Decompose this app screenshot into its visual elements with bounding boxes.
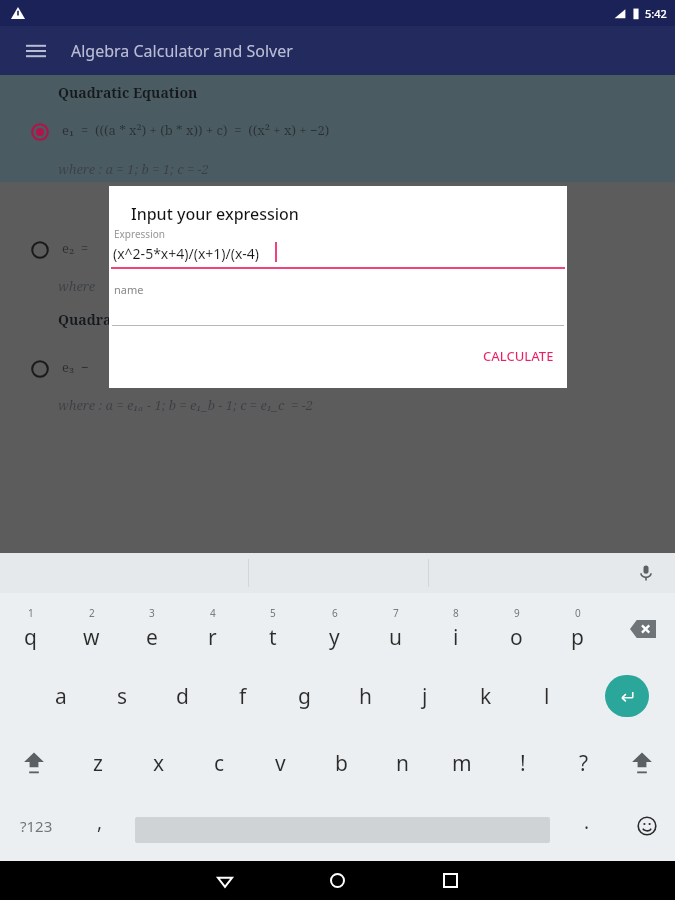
staticText: k: [480, 682, 492, 711]
button[interactable]: g: [278, 670, 330, 722]
button[interactable]: Select equation: [28, 357, 52, 381]
button[interactable]: b: [315, 737, 367, 789]
button[interactable]: a: [35, 670, 87, 722]
button[interactable]: s: [96, 670, 148, 722]
button[interactable]: x: [133, 737, 185, 789]
staticText: x: [153, 749, 165, 778]
staticText: l: [544, 682, 550, 711]
button[interactable]: 9: [490, 601, 542, 657]
button[interactable]: Home: [315, 861, 359, 900]
staticText: where : a = e₁ₐ − 1; b = e₁_b − 1; c = e…: [58, 396, 314, 414]
staticText: ?123: [20, 816, 53, 836]
staticText: a: [55, 682, 67, 711]
button[interactable]: Select equation: [28, 238, 52, 262]
staticText: b: [335, 749, 348, 778]
staticText: o: [510, 623, 523, 652]
button[interactable]: ,: [78, 803, 122, 849]
button[interactable]: Shift: [10, 739, 58, 787]
staticText: ?: [579, 749, 589, 778]
staticText: !: [520, 749, 526, 778]
staticText: c: [214, 749, 225, 778]
staticText: e: [146, 623, 158, 652]
staticText: Algebra Calculator and Solver: [71, 40, 293, 62]
staticText: (x^2-5*x+4)/(x+1)/(x-4): [113, 244, 260, 263]
staticText: CALCULATE: [483, 347, 554, 365]
button[interactable]: j: [399, 670, 451, 722]
button[interactable]: v: [254, 737, 306, 789]
button[interactable]: 4: [186, 601, 238, 657]
button[interactable]: 3: [126, 601, 178, 657]
button[interactable]: Emoji: [626, 805, 668, 847]
staticText: Expression: [114, 227, 165, 241]
button[interactable]: ?123: [6, 803, 66, 849]
button[interactable]: 7: [369, 601, 421, 657]
button[interactable]: m: [436, 737, 488, 789]
staticText: 0: [575, 606, 581, 620]
staticText: .: [584, 809, 590, 835]
staticText: j: [422, 682, 428, 711]
staticText: u: [389, 623, 402, 652]
staticText: t: [269, 623, 277, 652]
staticText: 5:42: [645, 6, 667, 21]
staticText: 7: [393, 606, 399, 620]
button[interactable]: Voice input: [631, 558, 661, 588]
staticText: 3: [149, 606, 155, 620]
button[interactable]: h: [339, 670, 391, 722]
staticText: n: [396, 749, 409, 778]
staticText: f: [239, 682, 247, 711]
button[interactable]: Recent apps: [428, 861, 472, 900]
staticText: g: [298, 682, 311, 711]
button[interactable]: Shift: [618, 739, 666, 787]
staticText: e₁ = (((a * x²) + (b * x)) + c) = ((x² +…: [62, 121, 330, 139]
button[interactable]: !: [497, 737, 549, 789]
staticText: 9: [514, 606, 520, 620]
button[interactable]: 5: [247, 601, 299, 657]
button[interactable]: 8: [430, 601, 482, 657]
staticText: name: [114, 282, 144, 297]
button[interactable]: c: [193, 737, 245, 789]
button[interactable]: Enter: [604, 673, 650, 719]
button[interactable]: 1: [4, 601, 56, 657]
button[interactable]: ?: [558, 737, 610, 789]
staticText: Quadratic Equation: [58, 310, 198, 329]
button[interactable]: f: [217, 670, 269, 722]
button[interactable]: .: [565, 803, 609, 849]
staticText: 5: [270, 606, 276, 620]
staticText: e₃ −: [62, 358, 89, 376]
staticText: v: [275, 749, 286, 778]
staticText: i: [453, 623, 459, 652]
button[interactable]: 0: [551, 601, 603, 657]
staticText: 6: [332, 606, 338, 620]
staticText: Quadratic Equation: [58, 83, 198, 102]
staticText: 4: [210, 606, 216, 620]
staticText: s: [117, 682, 128, 711]
staticText: where : a = 1; b = 1; c = −2: [58, 160, 209, 178]
staticText: Input your expression: [131, 203, 299, 225]
button[interactable]: k: [460, 670, 512, 722]
staticText: q: [24, 623, 37, 652]
staticText: h: [359, 682, 372, 711]
staticText: p: [571, 623, 584, 652]
staticText: r: [208, 623, 217, 652]
staticText: e₂ =: [62, 239, 89, 257]
staticText: 1: [28, 606, 34, 620]
staticText: where: [58, 277, 96, 295]
button[interactable]: n: [376, 737, 428, 789]
staticText: 8: [453, 606, 459, 620]
staticText: w: [83, 623, 100, 652]
button[interactable]: CALCULATE: [469, 338, 568, 374]
button[interactable]: z: [72, 737, 124, 789]
button[interactable]: d: [156, 670, 208, 722]
staticText: d: [176, 682, 189, 711]
staticText: ,: [97, 809, 103, 835]
staticText: 2: [89, 606, 95, 620]
button[interactable]: Open navigation menu: [16, 31, 56, 71]
button[interactable]: 6: [308, 601, 360, 657]
staticText: z: [93, 749, 103, 778]
button[interactable]: l: [521, 670, 573, 722]
button[interactable]: Backspace: [620, 605, 666, 653]
button[interactable]: Select equation: [28, 120, 52, 144]
button[interactable]: Back: [203, 861, 247, 900]
button[interactable]: 2: [65, 601, 117, 657]
